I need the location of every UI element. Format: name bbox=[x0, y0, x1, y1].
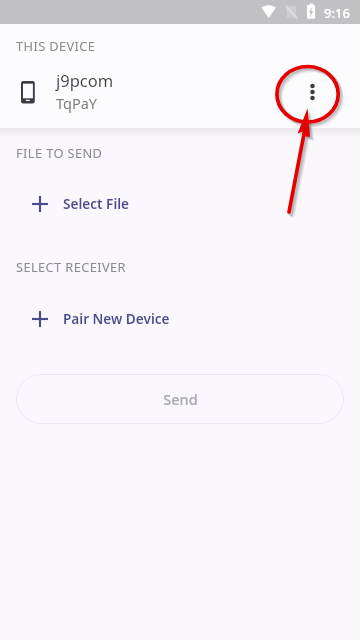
staticText: FILE TO SEND bbox=[16, 144, 103, 161]
staticText: Select File bbox=[63, 194, 130, 213]
button[interactable]: Send bbox=[16, 374, 344, 424]
staticText: THIS DEVICE bbox=[16, 37, 96, 54]
button[interactable]: Select File bbox=[0, 180, 360, 226]
button[interactable]: More options bbox=[288, 68, 336, 116]
staticText: SELECT RECEIVER bbox=[16, 258, 126, 275]
staticText: Pair New Device bbox=[63, 309, 170, 328]
staticText: j9pcom bbox=[56, 69, 114, 91]
staticText: Send bbox=[163, 389, 198, 409]
staticText: TqPaY bbox=[56, 93, 98, 113]
button[interactable]: Pair New Device bbox=[0, 295, 360, 341]
staticText: 9:16 bbox=[324, 4, 350, 22]
